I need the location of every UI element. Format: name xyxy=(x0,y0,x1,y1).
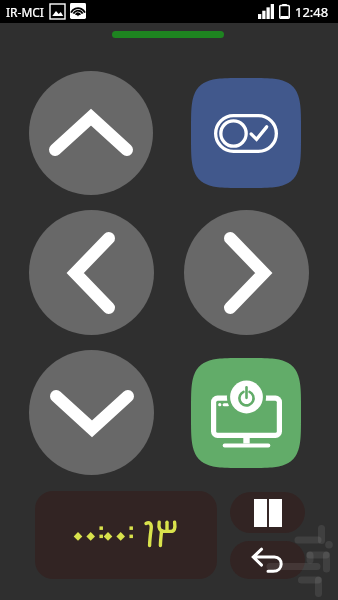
button[interactable]: Power xyxy=(191,358,301,468)
button[interactable]: Right xyxy=(184,210,309,335)
button[interactable]: Back xyxy=(230,541,305,579)
button[interactable]: Left xyxy=(29,210,154,335)
staticText: IR-MCI xyxy=(6,4,44,20)
staticText: 12:48 xyxy=(295,3,329,21)
button[interactable] xyxy=(35,491,217,579)
button[interactable]: Down xyxy=(29,350,154,475)
button[interactable]: Up xyxy=(29,71,153,195)
button[interactable]: Toggle xyxy=(191,78,301,188)
button[interactable]: Pause xyxy=(230,492,305,533)
